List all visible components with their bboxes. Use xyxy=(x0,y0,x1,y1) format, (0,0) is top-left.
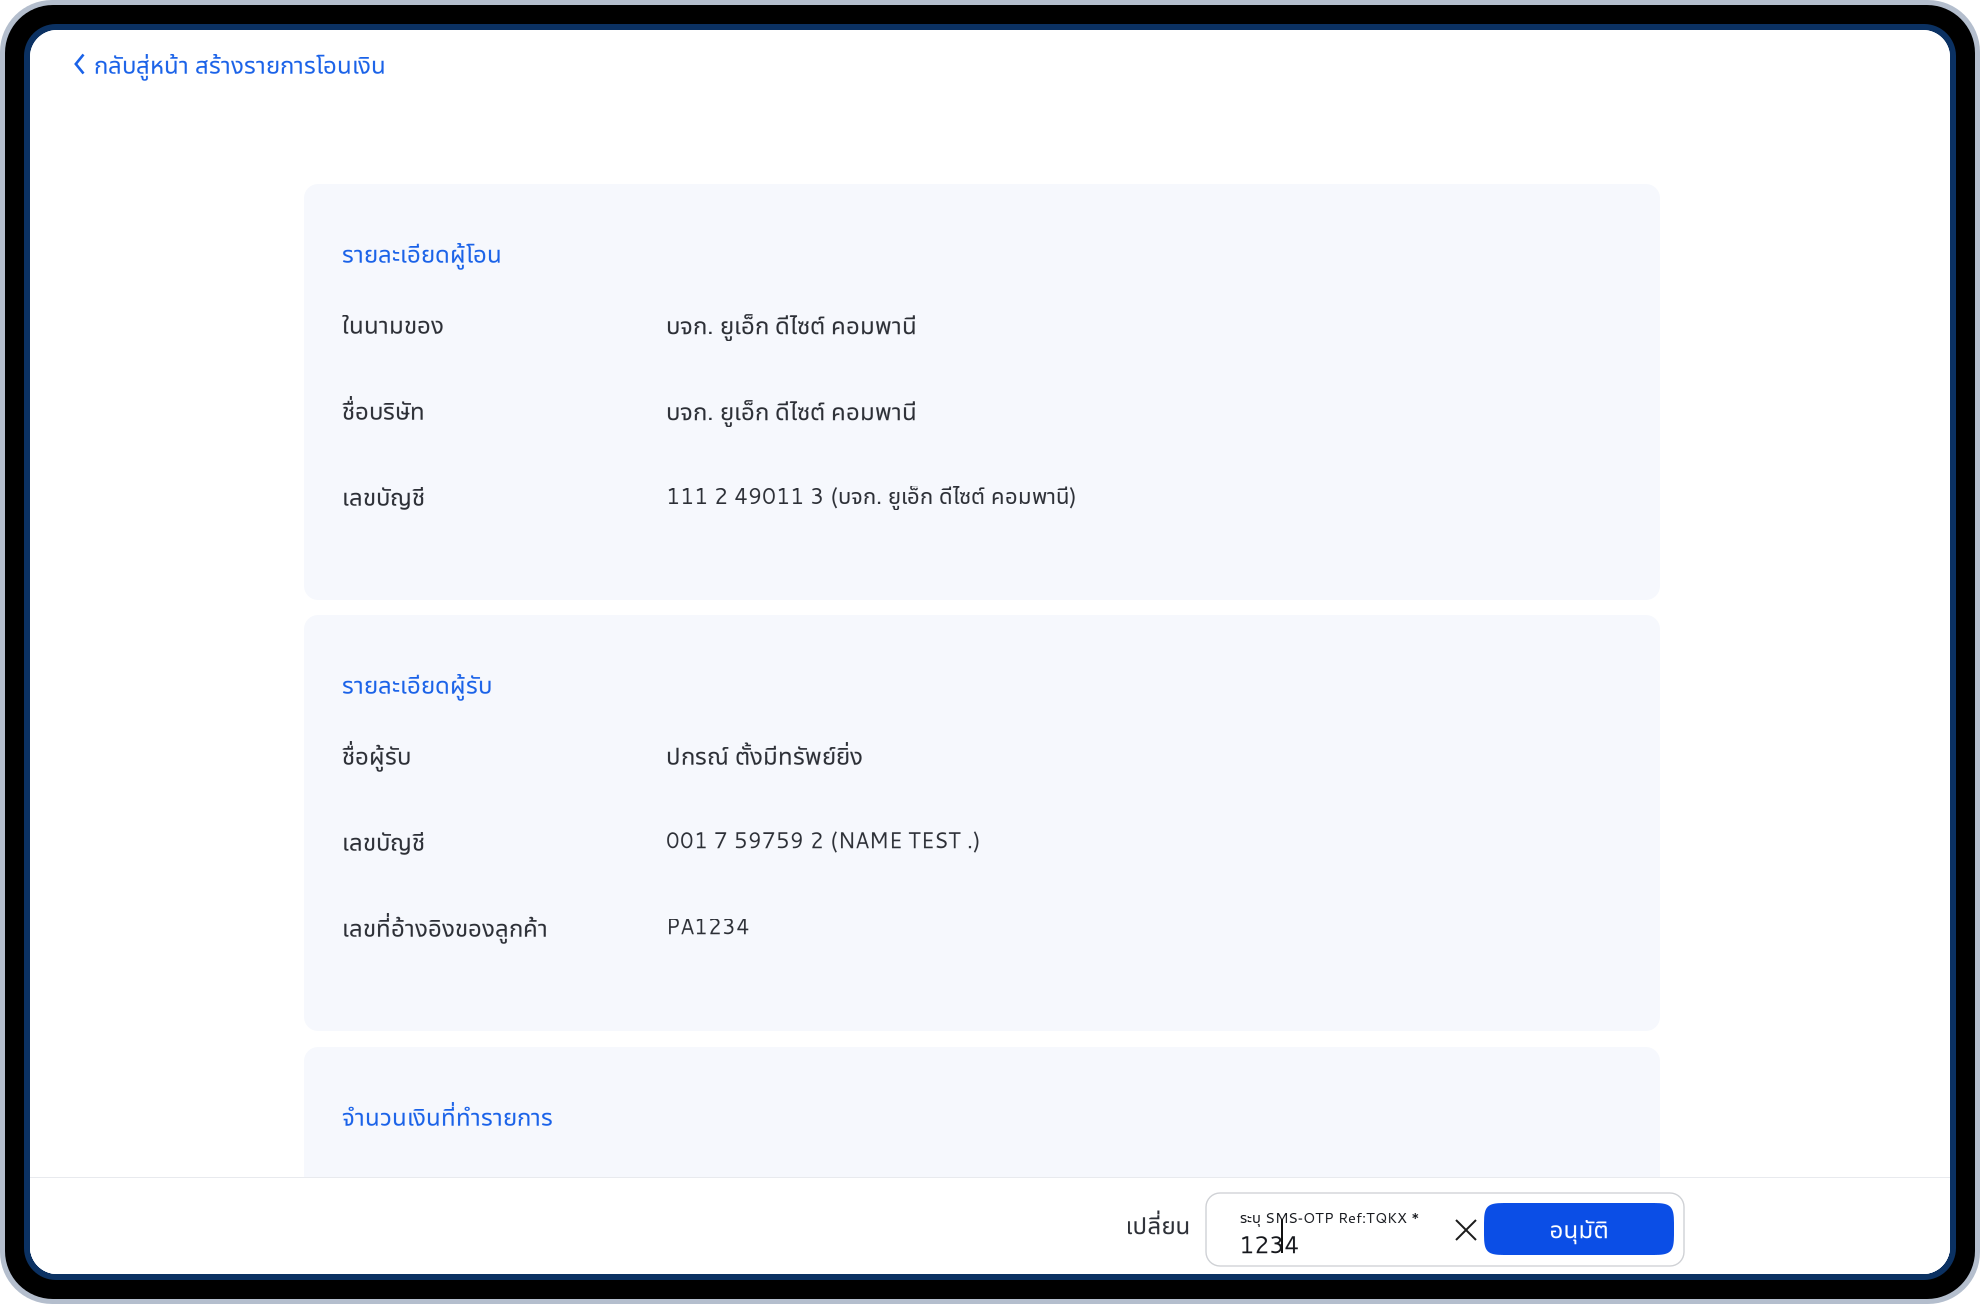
staticText: เลขบัญชี xyxy=(342,825,425,858)
staticText: อนุมัติ xyxy=(1549,1213,1608,1245)
button[interactable]: กลับสู่หน้า สร้างรายการโอนเงิน xyxy=(74,40,394,88)
staticText: รายละเอียดผู้โอน xyxy=(342,237,502,270)
staticText: 10,000.00 THB xyxy=(666,1171,827,1201)
staticText: ระบุ SMS-OTP Ref:TQKX * xyxy=(1240,1207,1420,1228)
staticText: บจก. ยูเอ็ก ดีไซต์ คอมพานี xyxy=(666,394,917,428)
staticText: ในนามของ xyxy=(342,308,444,341)
staticText: 1234 xyxy=(1239,1227,1299,1261)
staticText: รายละเอียดผู้รับ xyxy=(342,668,492,701)
staticText: PA1234 xyxy=(666,911,750,941)
staticText: เลขบัญชี xyxy=(342,480,425,513)
staticText: ชื่อผู้รับ xyxy=(342,739,411,772)
button[interactable]: อนุมัติ xyxy=(1484,1203,1674,1255)
staticText: ปกรณ์ ตั้งมีทรัพย์ยิ่ง xyxy=(666,739,863,772)
button[interactable]: Clear xyxy=(1455,1219,1477,1241)
staticText: เลขที่อ้างอิงของลูกค้า xyxy=(342,911,548,944)
button[interactable]: เปลี่ยน xyxy=(1108,1200,1208,1250)
staticText: เปลี่ยน xyxy=(1125,1209,1190,1241)
staticText: จำนวนเงินที่ทำรายการ xyxy=(342,1100,553,1133)
staticText: 111 2 49011 3 (บจก. ยูเอ็ก ดีไซต์ คอมพาน… xyxy=(666,480,1077,511)
staticText: ชื่อบริษัท xyxy=(342,394,425,427)
staticText: บจก. ยูเอ็ก ดีไซต์ คอมพานี xyxy=(666,308,917,342)
staticText: กลับสู่หน้า สร้างรายการโอนเงิน xyxy=(94,48,386,81)
staticText: 001 7 59759 2 (NAME TEST .) xyxy=(666,825,981,855)
